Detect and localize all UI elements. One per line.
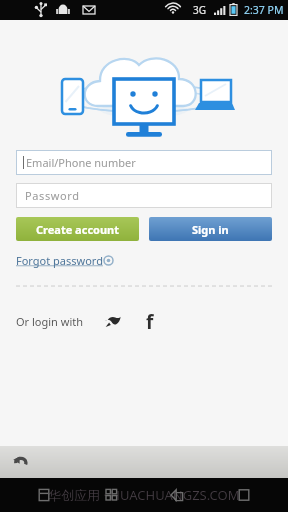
button[interactable]: Login with Facebook <box>138 309 162 333</box>
staticText: Create account <box>36 222 120 237</box>
staticText: Password <box>25 188 80 203</box>
button[interactable]: Sign in <box>149 217 272 241</box>
button[interactable]: Back <box>6 448 34 476</box>
staticText: 2:37 PM <box>244 3 284 17</box>
button[interactable]: Recent apps <box>222 478 266 512</box>
button[interactable]: Back <box>155 478 199 512</box>
button[interactable]: Email/Phone number <box>16 150 272 175</box>
button[interactable]: Apps <box>89 478 133 512</box>
staticText: Forgot password <box>16 253 103 268</box>
staticText: 华创应用 · HUACHUANGZS.COM <box>48 486 240 504</box>
button[interactable]: Create account <box>16 217 139 241</box>
staticText: 3G <box>193 3 206 17</box>
button[interactable]: Forgot password <box>16 251 113 270</box>
button[interactable]: Login with Twitter <box>100 309 124 333</box>
button[interactable]: Password <box>16 183 272 208</box>
staticText: Sign in <box>192 222 229 237</box>
staticText: Email/Phone number <box>26 155 136 170</box>
staticText: f <box>146 309 154 333</box>
staticText: Or login with <box>16 314 84 329</box>
button[interactable]: Menu <box>22 478 66 512</box>
